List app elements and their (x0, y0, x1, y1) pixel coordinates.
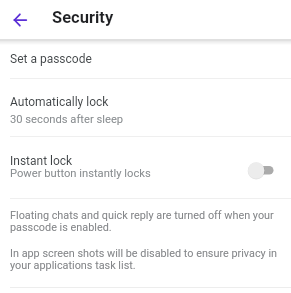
staticText: In app screen shots will be disabled to … (10, 247, 278, 260)
staticText: Power button instantly locks (10, 167, 151, 180)
staticText: 30 seconds after sleep (10, 113, 124, 126)
staticText: Floating chats and quick reply are turne… (10, 209, 274, 222)
staticText: your applications task list. (10, 259, 136, 272)
staticText: passcode is enabled. (10, 221, 112, 234)
staticText: Security (52, 8, 114, 27)
button[interactable]: Instant lock (0, 137, 291, 198)
staticText: Automatically lock (10, 95, 109, 109)
button[interactable] (244, 158, 278, 182)
button[interactable]: Automatically lock (0, 79, 291, 136)
staticText: Set a passcode (10, 52, 92, 66)
staticText: Instant lock (10, 154, 73, 168)
button[interactable]: Set a passcode (0, 44, 291, 78)
button[interactable] (6, 5, 36, 35)
